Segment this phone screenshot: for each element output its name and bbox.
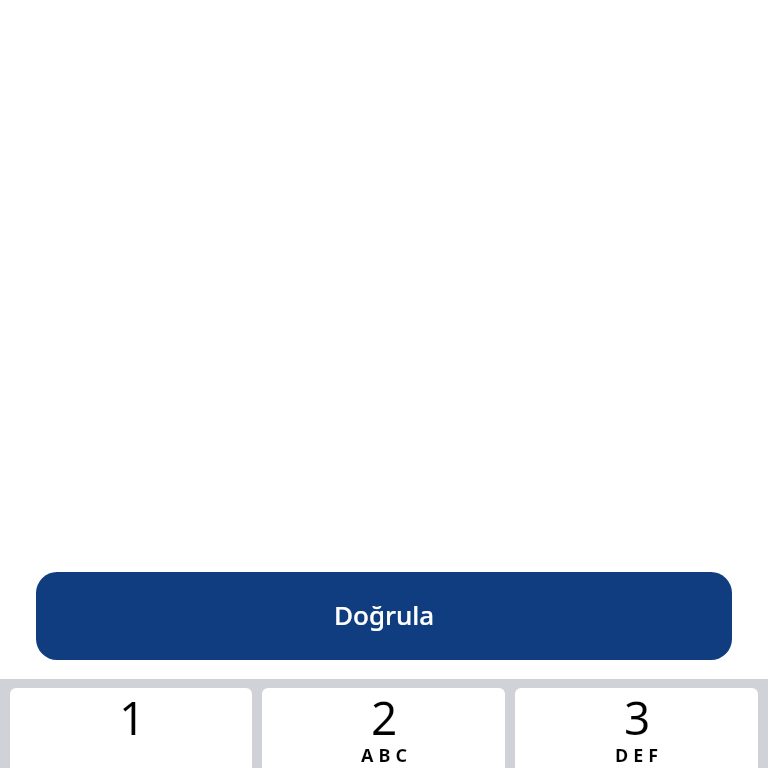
staticText: ABC	[361, 743, 412, 768]
button[interactable]: Doğrula	[36, 572, 732, 660]
button[interactable]: 1	[10, 688, 252, 768]
staticText: 3	[624, 688, 651, 749]
staticText: DEF	[615, 743, 664, 768]
button[interactable]: 3 DEF	[515, 688, 758, 768]
staticText: Doğrula	[334, 597, 435, 632]
button[interactable]: 2 ABC	[262, 688, 505, 768]
staticText: 2	[371, 688, 398, 749]
staticText: 1	[119, 688, 146, 749]
